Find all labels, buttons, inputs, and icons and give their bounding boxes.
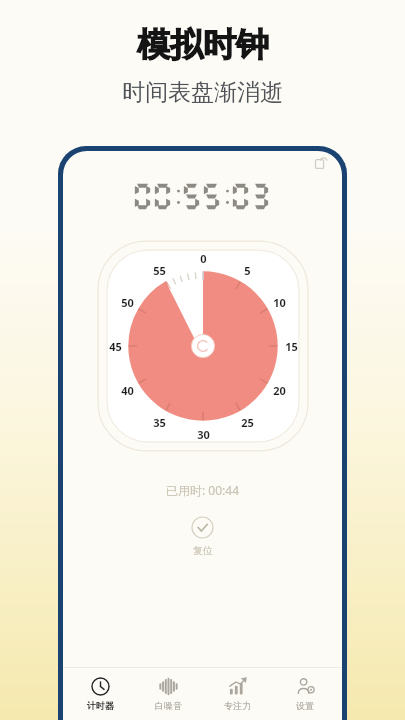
- staticText: 35: [153, 415, 166, 430]
- staticText: 复位: [193, 544, 213, 557]
- staticText: 计时器: [87, 700, 114, 711]
- button[interactable]: 白噪音: [136, 668, 200, 720]
- button[interactable]: 复位: [181, 514, 224, 559]
- button[interactable]: 设置: [273, 668, 337, 720]
- staticText: 10: [273, 295, 286, 310]
- staticText: 50: [121, 295, 134, 310]
- staticText: 模拟时钟: [137, 24, 269, 66]
- staticText: 15: [285, 339, 298, 354]
- staticText: 设置: [296, 700, 314, 711]
- staticText: 已用时: 00:44: [166, 482, 240, 498]
- button[interactable]: 计时器: [68, 668, 132, 720]
- staticText: 20: [273, 383, 286, 398]
- staticText: 25: [241, 415, 254, 430]
- staticText: 专注力: [224, 700, 251, 711]
- button[interactable]: Keep screen on: [310, 152, 332, 174]
- staticText: 40: [121, 383, 134, 398]
- staticText: 0: [200, 251, 207, 266]
- staticText: 45: [109, 339, 122, 354]
- button[interactable]: 专注力: [205, 668, 269, 720]
- staticText: 白噪音: [155, 700, 182, 711]
- staticText: 30: [197, 427, 210, 442]
- staticText: 时间表盘渐消逝: [122, 78, 283, 107]
- staticText: 5: [244, 263, 251, 278]
- staticText: 55: [153, 263, 166, 278]
